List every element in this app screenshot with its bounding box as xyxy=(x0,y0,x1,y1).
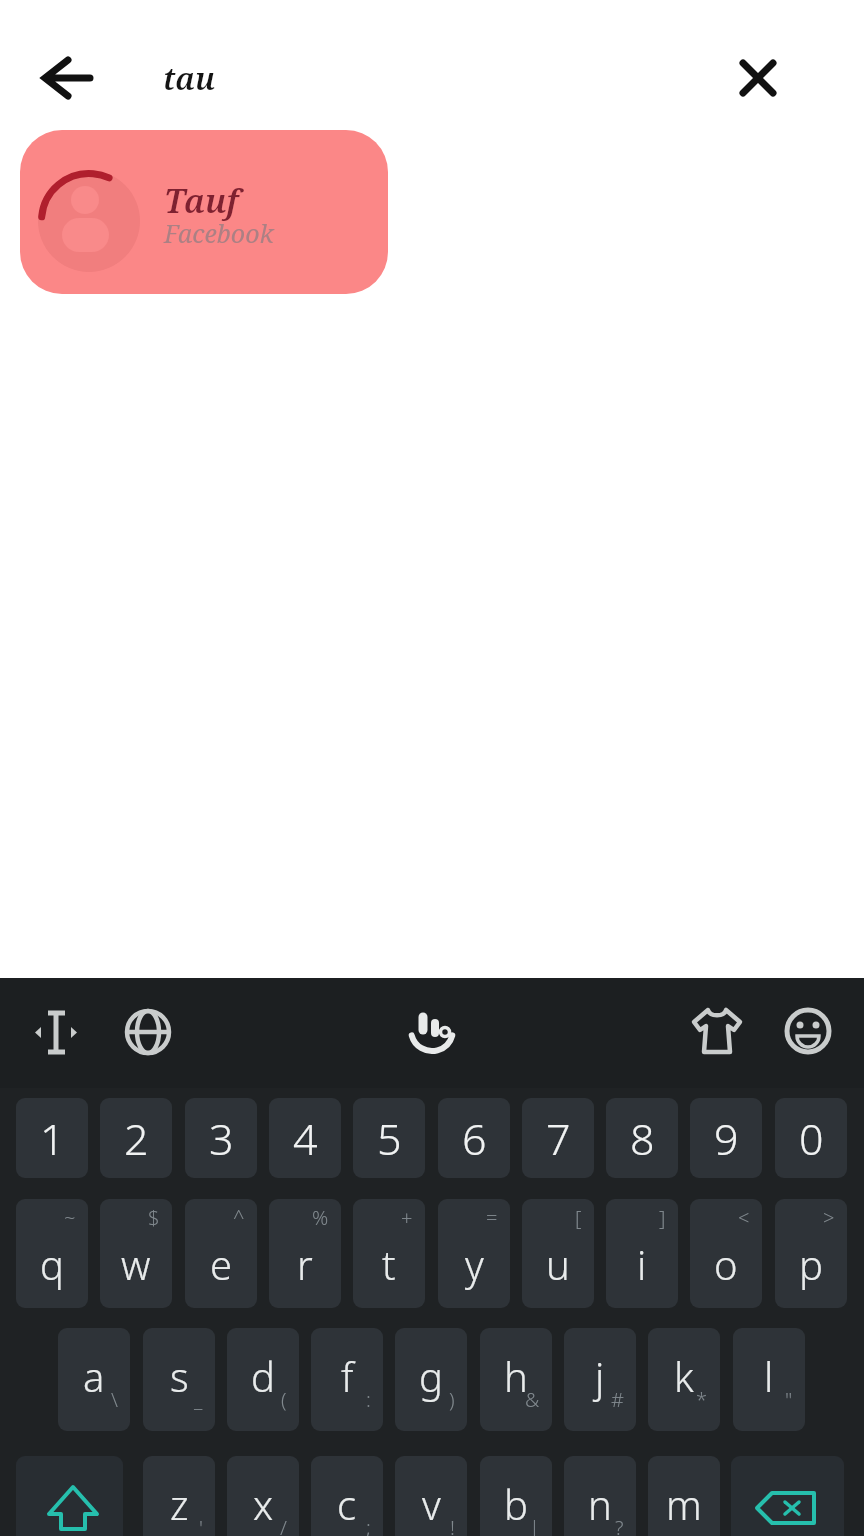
staticText: # xyxy=(611,1386,624,1413)
staticText: + xyxy=(401,1204,413,1231)
button[interactable] xyxy=(779,1002,837,1060)
staticText: ; xyxy=(366,1514,371,1536)
staticText: ) xyxy=(449,1386,455,1413)
staticText: $ xyxy=(148,1204,160,1231)
staticText: k xyxy=(674,1349,694,1403)
staticText: o xyxy=(714,1237,738,1291)
staticText: | xyxy=(529,1514,540,1536)
staticText: e xyxy=(210,1237,233,1291)
button[interactable]: a xyxy=(58,1328,130,1431)
button[interactable]: b xyxy=(480,1456,552,1536)
button[interactable] xyxy=(30,48,94,112)
staticText: f xyxy=(341,1349,354,1403)
button[interactable] xyxy=(726,46,790,110)
button[interactable]: d xyxy=(227,1328,299,1431)
staticText: d xyxy=(251,1349,275,1403)
staticText: 4 xyxy=(293,1109,318,1168)
button[interactable]: s xyxy=(143,1328,215,1431)
button[interactable]: 7 xyxy=(522,1098,594,1178)
button[interactable] xyxy=(120,1004,176,1060)
button[interactable]: 5 xyxy=(353,1098,425,1178)
staticText: ( xyxy=(281,1386,287,1413)
button[interactable]: 9 xyxy=(690,1098,762,1178)
button[interactable]: 4 xyxy=(269,1098,341,1178)
staticText: 6 xyxy=(462,1109,487,1168)
staticText: u xyxy=(546,1237,570,1291)
staticText: p xyxy=(799,1237,823,1291)
button[interactable] xyxy=(688,1002,746,1060)
button[interactable]: y xyxy=(438,1199,510,1308)
button[interactable] xyxy=(731,1456,844,1536)
staticText: z xyxy=(170,1477,189,1531)
staticText: ^ xyxy=(233,1204,245,1231)
staticText: 5 xyxy=(377,1109,402,1168)
staticText: = xyxy=(486,1204,498,1231)
staticText: < xyxy=(738,1204,750,1231)
staticText: 2 xyxy=(124,1109,149,1168)
button[interactable]: 3 xyxy=(185,1098,257,1178)
button[interactable]: 6 xyxy=(438,1098,510,1178)
button[interactable]: f xyxy=(311,1328,383,1431)
staticText: h xyxy=(504,1349,528,1403)
button[interactable]: x xyxy=(227,1456,299,1536)
button[interactable]: v xyxy=(395,1456,467,1536)
button[interactable]: m xyxy=(648,1456,720,1536)
staticText: Facebook xyxy=(164,216,274,250)
staticText: q xyxy=(40,1237,64,1291)
staticText: / xyxy=(280,1514,287,1536)
staticText: i xyxy=(637,1237,647,1291)
staticText: ~ xyxy=(64,1204,76,1231)
button[interactable] xyxy=(16,1456,123,1536)
button[interactable]: p xyxy=(775,1199,847,1308)
button[interactable]: e xyxy=(185,1199,257,1308)
button[interactable]: t xyxy=(353,1199,425,1308)
button[interactable] xyxy=(25,1000,85,1060)
button[interactable]: z xyxy=(143,1456,215,1536)
staticText: j xyxy=(595,1349,605,1403)
button[interactable]: q xyxy=(16,1199,88,1308)
staticText: _ xyxy=(194,1386,203,1413)
button[interactable]: 0 xyxy=(775,1098,847,1178)
button[interactable]: l xyxy=(733,1328,805,1431)
button[interactable]: Tauf xyxy=(20,130,388,294)
staticText: ' xyxy=(199,1514,203,1536)
staticText: c xyxy=(337,1477,357,1531)
button[interactable]: j xyxy=(564,1328,636,1431)
staticText: 3 xyxy=(209,1109,234,1168)
staticText: % xyxy=(312,1204,329,1231)
staticText: w xyxy=(121,1237,151,1291)
staticText: * xyxy=(696,1386,708,1413)
staticText: ! xyxy=(450,1514,455,1536)
staticText: tau xyxy=(163,57,215,99)
button[interactable]: n xyxy=(564,1456,636,1536)
staticText: : xyxy=(366,1386,371,1413)
staticText: \ xyxy=(111,1386,118,1413)
button[interactable]: h xyxy=(480,1328,552,1431)
button[interactable]: c xyxy=(311,1456,383,1536)
button[interactable]: 2 xyxy=(100,1098,172,1178)
button[interactable]: 8 xyxy=(606,1098,678,1178)
staticText: b xyxy=(504,1477,528,1531)
button[interactable]: w xyxy=(100,1199,172,1308)
button[interactable]: g xyxy=(395,1328,467,1431)
staticText: x xyxy=(253,1477,274,1531)
staticText: v xyxy=(422,1477,441,1531)
button[interactable]: u xyxy=(522,1199,594,1308)
staticText: [ xyxy=(575,1204,582,1231)
button[interactable]: o xyxy=(690,1199,762,1308)
staticText: a xyxy=(83,1349,105,1403)
button[interactable]: r xyxy=(269,1199,341,1308)
button[interactable]: i xyxy=(606,1199,678,1308)
button[interactable]: k xyxy=(648,1328,720,1431)
staticText: 0 xyxy=(799,1109,824,1168)
staticText: 1 xyxy=(40,1109,65,1168)
staticText: & xyxy=(525,1386,540,1413)
button[interactable]: 1 xyxy=(16,1098,88,1178)
staticText: > xyxy=(823,1204,835,1231)
staticText: t xyxy=(382,1237,396,1291)
staticText: s xyxy=(170,1349,189,1403)
staticText: Tauf xyxy=(164,178,239,223)
button[interactable] xyxy=(403,1000,463,1060)
staticText: r xyxy=(297,1237,313,1291)
staticText: ? xyxy=(615,1514,624,1536)
